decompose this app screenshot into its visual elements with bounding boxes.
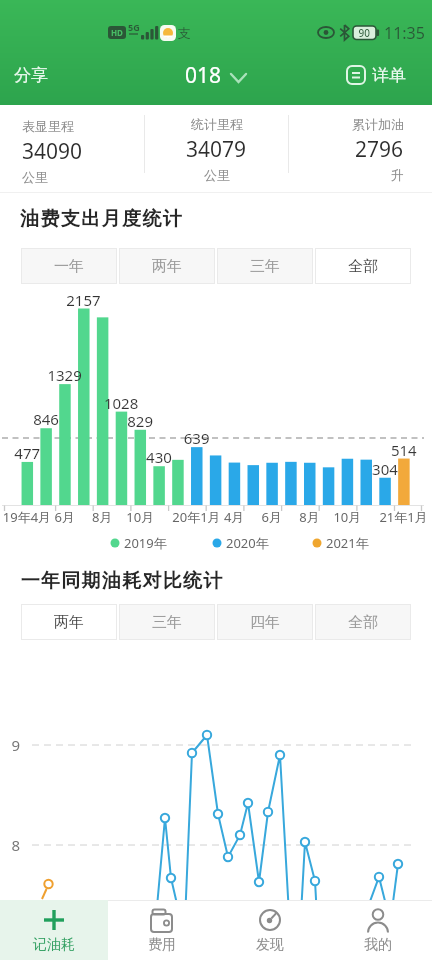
staticText: 我的	[364, 936, 392, 954]
button[interactable]: 三年	[217, 248, 313, 284]
button[interactable]: 分享	[14, 60, 48, 90]
button[interactable]: 费用	[108, 900, 216, 960]
button[interactable]: 发现	[216, 900, 324, 960]
staticText: 累计加油	[352, 116, 404, 132]
staticText: 表显里程	[22, 118, 74, 134]
staticText: 018	[185, 61, 222, 90]
staticText: 全部	[348, 257, 378, 276]
button[interactable]: 我的	[324, 900, 432, 960]
button[interactable]: 一年	[21, 248, 117, 284]
staticText: 全部	[348, 613, 378, 632]
staticText: 34090	[22, 137, 83, 166]
staticText: 公里	[204, 167, 230, 183]
staticText: 两年	[152, 257, 182, 276]
staticText: 34079	[186, 135, 247, 164]
staticText: 两年	[54, 613, 84, 632]
staticText: 一年同期油耗对比统计	[20, 569, 223, 593]
button[interactable]: 两年	[21, 604, 117, 640]
staticText: 公里	[22, 169, 48, 185]
staticText: 三年	[152, 613, 182, 632]
staticText: 统计里程	[191, 116, 243, 132]
staticText: 三年	[250, 257, 280, 276]
staticText: 升	[391, 167, 404, 183]
staticText: 2796	[355, 135, 404, 164]
staticText: 油费支出月度统计	[20, 207, 184, 231]
staticText: 费用	[148, 936, 176, 954]
staticText: 发现	[256, 936, 284, 954]
button[interactable]: 详单	[346, 60, 406, 90]
button[interactable]: 四年	[217, 604, 313, 640]
button[interactable]: 两年	[119, 248, 215, 284]
staticText: 记油耗	[33, 936, 75, 954]
staticText: 分享	[14, 65, 48, 86]
button[interactable]: 全部	[315, 248, 411, 284]
button[interactable]: 全部	[315, 604, 411, 640]
button[interactable]: 三年	[119, 604, 215, 640]
button[interactable]: 记油耗	[0, 900, 108, 960]
button[interactable]: 018	[185, 61, 247, 90]
staticText: 一年	[54, 257, 84, 276]
staticText: 详单	[372, 65, 406, 86]
staticText: 四年	[250, 613, 280, 632]
